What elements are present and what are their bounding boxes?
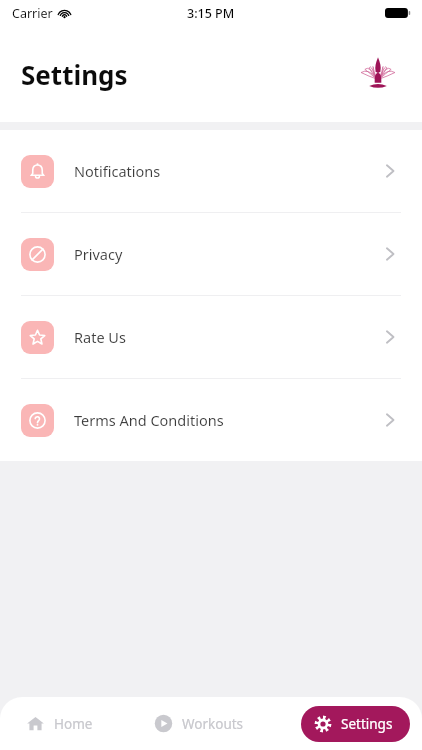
staticText: Settings xyxy=(341,715,393,733)
button[interactable]: Terms And Conditions xyxy=(0,379,422,461)
button[interactable]: Notifications xyxy=(0,130,422,212)
staticText: Carrier xyxy=(12,5,53,22)
other: Open xyxy=(379,409,401,431)
other: Open xyxy=(379,160,401,182)
staticText: Terms And Conditions xyxy=(74,410,224,430)
button[interactable]: Settings xyxy=(301,706,410,742)
staticText: Home xyxy=(54,715,93,733)
button[interactable]: Rate Us xyxy=(0,296,422,378)
other: Open xyxy=(379,243,401,265)
staticText: Notifications xyxy=(74,161,161,181)
button[interactable]: Profile xyxy=(352,48,404,100)
other: Open xyxy=(379,326,401,348)
button[interactable]: Workouts xyxy=(150,706,248,741)
button[interactable]: Privacy xyxy=(0,213,422,295)
staticText: Rate Us xyxy=(74,327,126,347)
button[interactable]: Home xyxy=(22,706,97,741)
staticText: Privacy xyxy=(74,244,123,264)
staticText: Settings xyxy=(21,57,128,92)
staticText: Workouts xyxy=(182,715,244,733)
staticText: 3:15 PM xyxy=(187,5,235,22)
